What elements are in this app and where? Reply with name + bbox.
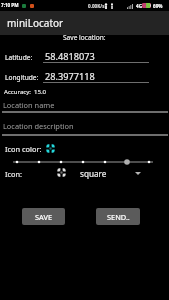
button[interactable]: Open icon dropdown [130,167,146,179]
staticText: Icon: [5,169,23,179]
staticText: Latitude: [5,53,33,62]
staticText: 15.0 [34,87,47,95]
button[interactable]: SAVE [22,208,65,225]
staticText: SEND.. [107,212,130,222]
staticText: Longitude: [5,73,39,82]
staticText: SAVE [35,212,53,222]
staticText: 0.00K/s [88,3,105,9]
staticText: Location description [3,121,74,131]
staticText: 28.3977118 [45,70,95,83]
button[interactable]: Marker icon [56,167,67,178]
staticText: 7:10 PM [1,2,19,8]
staticText: 58.4818073 [45,50,95,63]
staticText: Location name [3,100,55,110]
button[interactable] [0,157,169,167]
staticText: Icon color: [5,144,42,154]
staticText: Accuracy: [4,87,31,95]
staticText: 4G [136,3,142,9]
staticText: miniLocator [7,16,64,30]
button[interactable]: SEND.. [96,208,140,225]
staticText: 69% [153,3,163,9]
staticText: Save location: [63,33,106,42]
staticText: square [80,168,107,179]
button[interactable]: Marker icon [45,143,56,154]
